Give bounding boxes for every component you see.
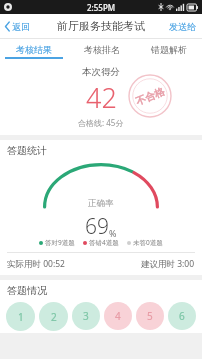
staticText: 错题解析: [151, 44, 187, 55]
staticText: 6: [179, 309, 185, 323]
staticText: 建议用时 3:00: [141, 258, 195, 270]
button[interactable]: 发送给: [163, 16, 202, 37]
button[interactable]: 2: [39, 302, 68, 331]
button[interactable]: 5: [136, 302, 164, 330]
button[interactable]: 考核结果: [0, 39, 68, 59]
staticText: %: [109, 227, 117, 239]
button[interactable]: 1: [6, 302, 35, 331]
button[interactable]: 返回: [0, 17, 36, 36]
staticText: 前厅服务技能考试: [57, 19, 145, 33]
staticText: 5: [147, 309, 153, 323]
staticText: 42: [86, 79, 117, 116]
staticText: 正确率: [88, 198, 114, 209]
button[interactable]: 4: [104, 302, 132, 330]
staticText: 1: [18, 310, 24, 324]
staticText: 考核排名: [84, 44, 120, 55]
staticText: 答题情况: [7, 284, 47, 297]
staticText: 2: [51, 310, 57, 324]
staticText: 答错4道题: [89, 238, 119, 247]
staticText: 考核结果: [16, 44, 52, 55]
staticText: 3: [83, 309, 89, 323]
staticText: 合格线: 45分: [78, 117, 124, 128]
staticText: 实际用时 00:52: [7, 258, 65, 270]
staticText: 未答0道题: [133, 238, 163, 247]
staticText: 69: [85, 212, 109, 241]
staticText: 答题统计: [7, 144, 47, 157]
staticText: 不合格: [134, 85, 166, 108]
staticText: 答对9道题: [45, 238, 75, 247]
button[interactable]: 6: [168, 302, 196, 330]
staticText: 4: [115, 309, 121, 323]
staticText: 发送给: [169, 21, 196, 32]
staticText: 2:55PM: [87, 2, 116, 13]
staticText: 本次得分: [82, 66, 120, 78]
button[interactable]: 3: [72, 302, 100, 330]
staticText: 返回: [12, 21, 30, 32]
button[interactable]: 错题解析: [135, 39, 202, 59]
button[interactable]: 考核排名: [68, 39, 135, 59]
